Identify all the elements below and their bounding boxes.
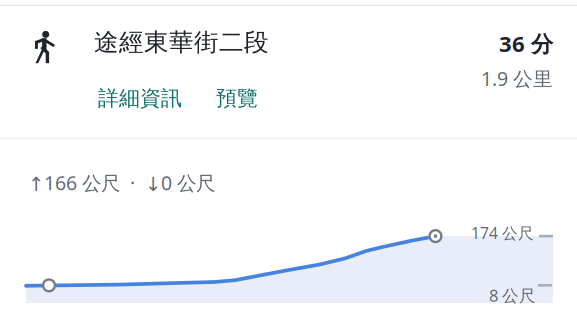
- button[interactable]: 詳細資訊: [86, 78, 194, 118]
- button[interactable]: 預覽: [204, 78, 270, 118]
- staticText: 途經東華街二段: [94, 27, 269, 58]
- staticText: ↑166 公尺 · ↓0 公尺: [28, 169, 215, 196]
- staticText: 預覽: [216, 85, 258, 111]
- staticText: 8 公尺: [489, 284, 536, 306]
- staticText: 36 分: [499, 28, 553, 58]
- staticText: 174 公尺: [471, 222, 534, 244]
- staticText: 1.9 公里: [481, 65, 553, 92]
- staticText: 詳細資訊: [98, 85, 182, 111]
- button[interactable]: 途經東華街二段: [0, 6, 577, 77]
